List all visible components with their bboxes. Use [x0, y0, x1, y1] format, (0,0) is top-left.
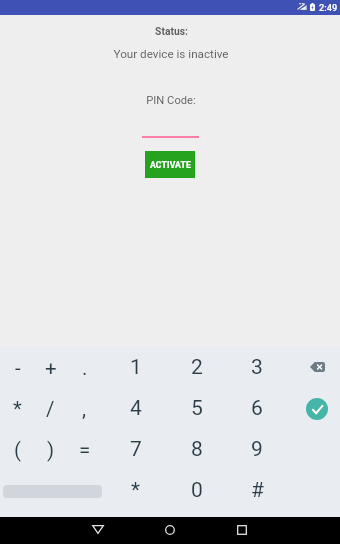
button[interactable]: 0 — [167, 470, 227, 511]
staticText: 8 — [191, 437, 203, 462]
button[interactable]: * — [106, 470, 166, 511]
staticText: + — [45, 356, 57, 380]
staticText: Your device is inactive — [113, 47, 229, 61]
staticText: # — [251, 478, 264, 503]
staticText: * — [131, 478, 141, 503]
staticText: , — [82, 397, 87, 421]
staticText: ACTIVATE — [150, 160, 191, 170]
button[interactable]: ACTIVATE — [145, 151, 195, 178]
button[interactable]: Enter — [294, 388, 340, 429]
button[interactable]: = — [68, 429, 101, 470]
staticText: = — [79, 438, 91, 462]
button[interactable]: # — [227, 470, 287, 511]
button[interactable]: 5 — [167, 388, 227, 429]
staticText: PIN Code: — [146, 94, 196, 107]
staticText: 9 — [251, 437, 263, 462]
button[interactable]: Recents — [218, 517, 266, 544]
staticText: Status: — [155, 25, 188, 37]
button[interactable]: 6 — [227, 388, 287, 429]
staticText: 2 — [191, 355, 203, 380]
button[interactable]: 9 — [227, 429, 287, 470]
staticText: . — [82, 356, 88, 380]
staticText: 2:49 — [319, 2, 338, 13]
button[interactable]: + — [34, 347, 67, 388]
staticText: ) — [47, 438, 55, 462]
staticText: 5 — [191, 396, 203, 421]
button[interactable]: Backspace — [294, 347, 340, 388]
button[interactable]: 3 — [227, 347, 287, 388]
staticText: / — [46, 397, 55, 421]
button[interactable]: 1 — [106, 347, 166, 388]
button[interactable]: Home — [146, 517, 194, 544]
staticText: ( — [14, 438, 22, 462]
staticText: 0 — [191, 478, 203, 503]
staticText: 3 — [251, 355, 263, 380]
button[interactable]: * — [1, 388, 34, 429]
button[interactable]: . — [68, 347, 101, 388]
button[interactable]: ( — [1, 429, 34, 470]
staticText: 4 — [130, 396, 142, 421]
button[interactable]: 7 — [106, 429, 166, 470]
button[interactable]: 8 — [167, 429, 227, 470]
button[interactable]: PIN Code input — [142, 118, 199, 138]
staticText: 7 — [130, 437, 142, 462]
button[interactable]: / — [34, 388, 67, 429]
button[interactable]: 2 — [167, 347, 227, 388]
staticText: - — [15, 356, 21, 380]
staticText: 1 — [130, 355, 142, 380]
staticText: 6 — [251, 396, 263, 421]
button[interactable]: , — [68, 388, 101, 429]
button[interactable]: ) — [34, 429, 67, 470]
button[interactable]: 4 — [106, 388, 166, 429]
button[interactable]: - — [1, 347, 34, 388]
button[interactable]: Back — [74, 517, 122, 544]
staticText: * — [13, 397, 22, 421]
